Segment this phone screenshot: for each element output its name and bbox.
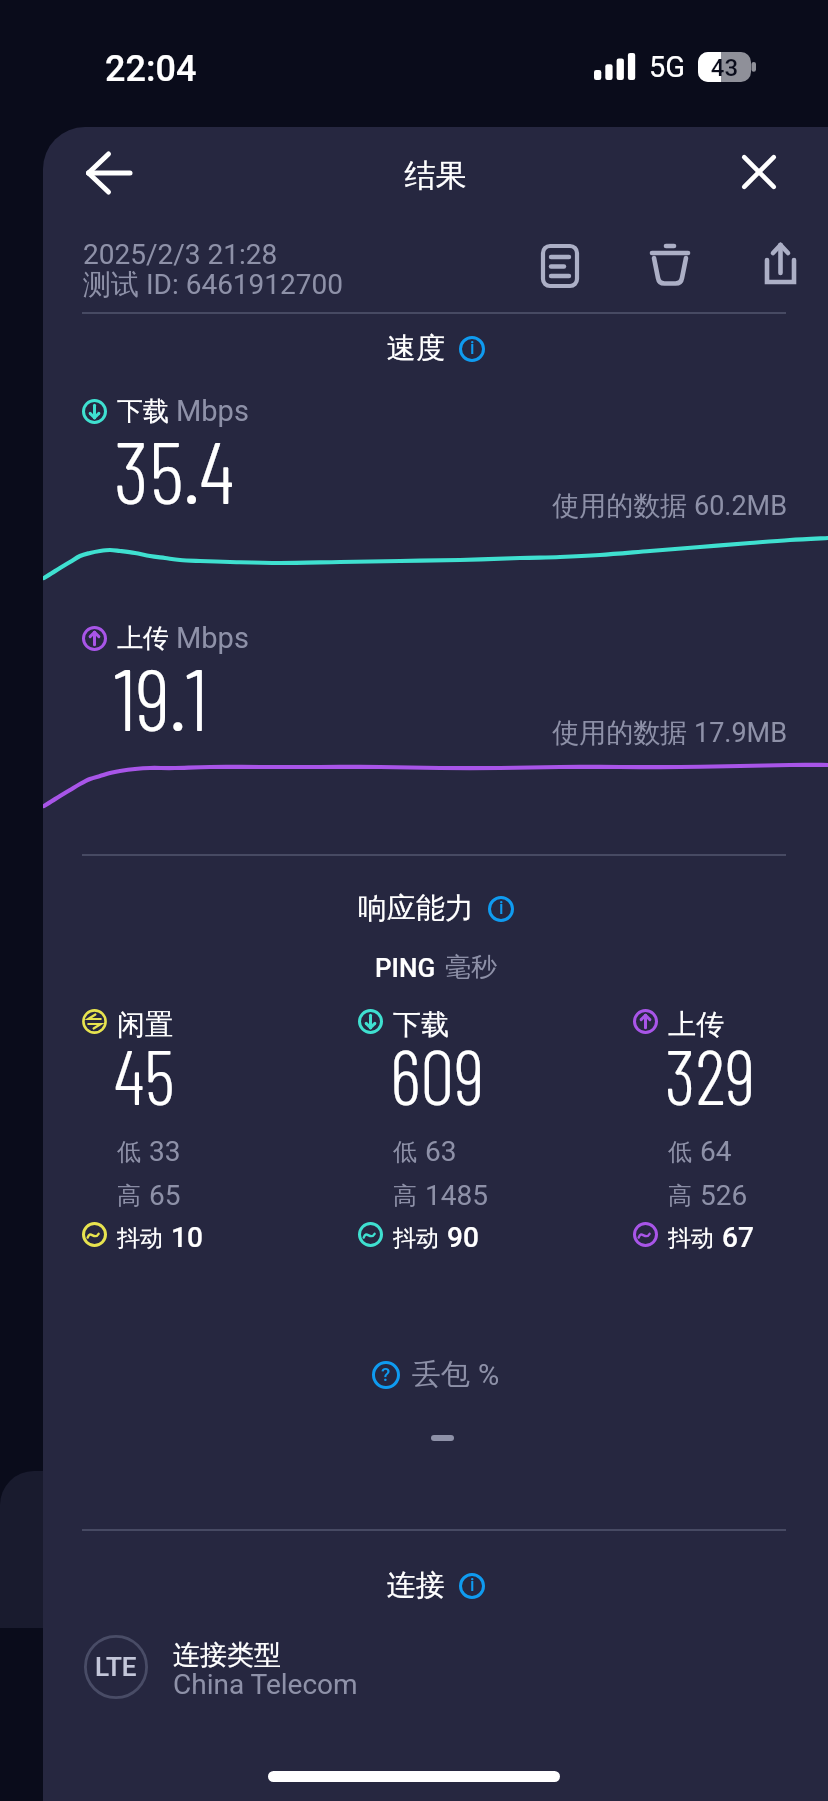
button[interactable]: Share result: [750, 231, 810, 291]
staticText: 毫秒: [445, 951, 497, 984]
staticText: 闲置: [117, 1007, 173, 1042]
staticText: 329: [665, 1029, 756, 1120]
staticText: 低: [668, 1137, 692, 1167]
staticText: 609: [390, 1029, 485, 1120]
staticText: 35.4: [114, 417, 235, 521]
staticText: 上传: [668, 1007, 724, 1042]
staticText: 抖动: [668, 1224, 714, 1253]
staticText: 63: [425, 1135, 457, 1168]
staticText: 使用的数据 60.2MB: [43, 489, 787, 523]
staticText: 抖动: [393, 1224, 439, 1253]
staticText: i: [470, 1575, 475, 1596]
staticText: 19.1: [114, 644, 208, 748]
button[interactable]: Delete result: [640, 231, 700, 291]
staticText: PING: [375, 953, 436, 983]
staticText: 43: [698, 54, 751, 80]
button[interactable]: More info: [459, 1573, 485, 1599]
staticText: 测试 ID: 6461912700: [83, 267, 344, 302]
staticText: Mbps: [176, 621, 249, 655]
staticText: 丢包: [412, 1356, 470, 1393]
staticText: i: [499, 898, 504, 919]
staticText: 高: [117, 1181, 141, 1211]
staticText: 上传: [117, 622, 169, 655]
staticText: 45: [114, 1029, 175, 1120]
staticText: 响应能力: [358, 890, 474, 927]
staticText: 低: [117, 1137, 141, 1167]
staticText: 高: [668, 1181, 692, 1211]
staticText: 下载: [117, 395, 169, 428]
button[interactable]: More info: [459, 336, 485, 362]
staticText: 526: [700, 1179, 748, 1212]
staticText: LTE: [95, 1652, 137, 1682]
staticText: ?: [381, 1363, 391, 1385]
staticText: 使用的数据 17.9MB: [43, 716, 787, 750]
staticText: 2025/2/3 21:28: [83, 238, 278, 271]
staticText: 下载: [393, 1007, 449, 1042]
staticText: i: [470, 338, 475, 359]
staticText: 1485: [425, 1179, 488, 1212]
button[interactable]: More info: [488, 896, 514, 922]
staticText: 连接: [387, 1567, 445, 1604]
staticText: 连接类型: [173, 1638, 281, 1672]
staticText: Mbps: [176, 394, 249, 428]
staticText: 10: [171, 1221, 203, 1254]
button[interactable]: Close: [719, 132, 799, 212]
staticText: 90: [447, 1221, 479, 1254]
button[interactable]: Show comments: [530, 231, 590, 291]
staticText: 64: [700, 1135, 732, 1168]
staticText: 65: [149, 1179, 181, 1212]
staticText: 速度: [387, 330, 445, 367]
staticText: 5G: [649, 50, 686, 84]
staticText: 结果: [43, 156, 828, 195]
staticText: 22:04: [105, 48, 197, 90]
staticText: China Telecom: [173, 1668, 358, 1701]
staticText: 抖动: [117, 1224, 163, 1253]
staticText: 低: [393, 1137, 417, 1167]
staticText: %: [478, 1358, 500, 1392]
staticText: 高: [393, 1181, 417, 1211]
staticText: 33: [149, 1135, 181, 1168]
staticText: 67: [722, 1221, 754, 1254]
button[interactable]: Back: [69, 133, 149, 213]
